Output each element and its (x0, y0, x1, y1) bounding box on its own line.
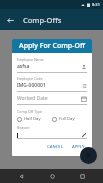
button[interactable]: Half Day (17, 116, 52, 122)
button[interactable]: Full Day (52, 116, 87, 122)
staticText: asfsa (17, 63, 81, 70)
staticText: Reason (17, 125, 30, 130)
staticText: APPLY (72, 144, 85, 150)
button[interactable]: Back (0, 10, 20, 30)
button[interactable]: Home (42, 169, 62, 183)
staticText: Comp-Offs (23, 15, 62, 25)
staticText: Employee Name (17, 57, 44, 62)
button[interactable]: CANCEL (45, 143, 65, 151)
button[interactable]: Employee Name (17, 57, 87, 73)
button[interactable]: Recent apps (72, 169, 92, 183)
staticText: Full Day (59, 116, 75, 122)
button[interactable]: Back (11, 169, 31, 183)
staticText: 8:31 (92, 2, 100, 7)
button[interactable]: Worked Date (17, 95, 87, 105)
staticText: Apply For Comp-Off (19, 41, 85, 51)
staticText: Half Day (24, 116, 41, 122)
button[interactable]: Employee Code (17, 76, 87, 92)
staticText: Worked Date (17, 95, 81, 102)
staticText: Employee Code (17, 76, 43, 81)
button[interactable]: Add comp-off (80, 147, 97, 164)
staticText: Comp-Off Type (17, 109, 43, 114)
staticText: IMG-000001 (17, 82, 81, 89)
staticText: CANCEL (47, 144, 63, 150)
button[interactable]: Edit reason (81, 132, 87, 138)
button[interactable]: APPLY (70, 143, 87, 151)
